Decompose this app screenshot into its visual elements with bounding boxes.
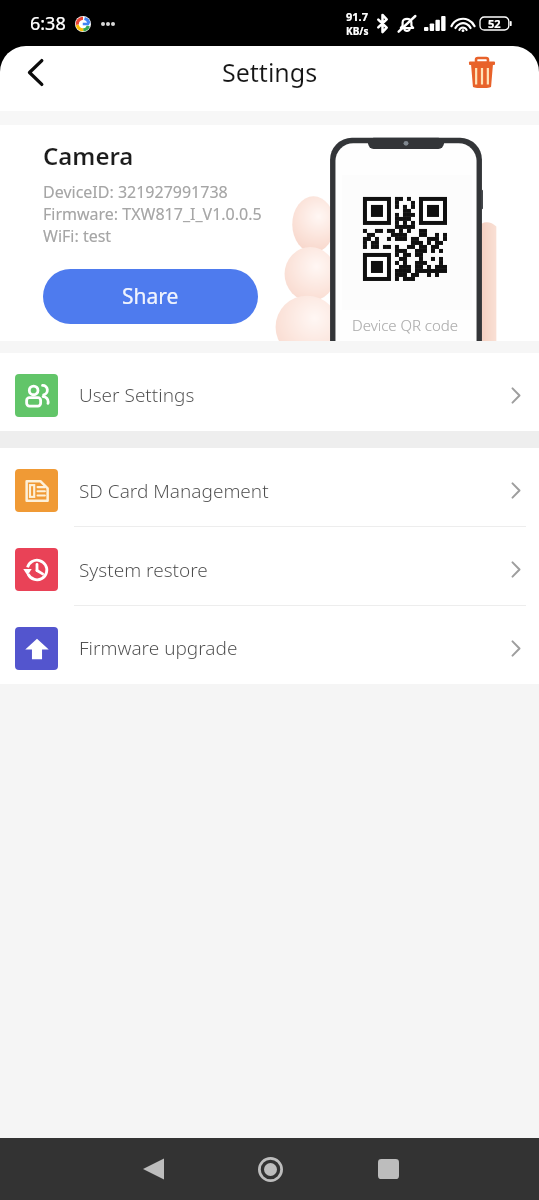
button[interactable]: Back [0,46,62,111]
staticText: DeviceID: 321927991738 [43,181,228,203]
button[interactable]: System restore [0,527,539,606]
staticText: Firmware: TXW817_I_V1.0.0.5 [43,203,262,225]
button[interactable]: Home [242,1141,298,1197]
staticText: Camera [43,139,134,172]
button[interactable]: SD Card Management [0,448,539,527]
button[interactable]: Recent apps [360,1141,416,1197]
button[interactable]: Firmware upgrade [0,606,539,684]
staticText: SD Card Management [79,478,269,504]
button[interactable]: Share [43,269,258,324]
staticText: 6:38 [30,11,66,36]
button[interactable]: Back [125,1141,181,1197]
staticText: Device QR code [352,315,459,335]
button[interactable]: Delete [469,46,539,111]
staticText: Settings [222,55,318,89]
staticText: 52 [488,16,501,31]
staticText: Share [122,282,179,311]
staticText: System restore [79,557,208,583]
staticText: User Settings [79,382,195,408]
staticText: 91.7 [346,9,368,24]
staticText: WiFi: test [43,225,112,247]
staticText: KB/s [346,24,369,38]
staticText: Firmware upgrade [79,635,238,661]
button[interactable]: User Settings [0,353,539,431]
